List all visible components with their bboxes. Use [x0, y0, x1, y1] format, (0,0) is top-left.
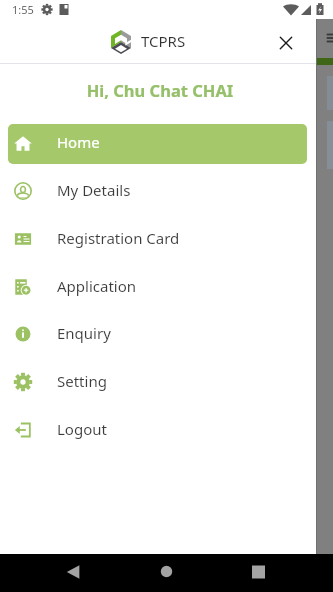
button[interactable]: Logout	[0, 409, 307, 449]
button[interactable]: Back	[52, 554, 94, 592]
button[interactable]: My Details	[0, 170, 307, 210]
button[interactable]: Application	[0, 266, 307, 306]
button[interactable]: Home	[0, 122, 307, 162]
staticText: My Details	[57, 180, 131, 200]
staticText: Home	[57, 132, 100, 152]
staticText: TCPRS	[141, 31, 186, 51]
staticText: Application	[57, 276, 137, 296]
staticText: Setting	[57, 371, 107, 391]
staticText: Hi, Chu Chat CHAI	[2, 79, 318, 101]
button[interactable]: Home	[145, 554, 187, 592]
button[interactable]: Close drawer	[272, 29, 300, 57]
staticText: 1:55	[12, 2, 34, 17]
button[interactable]: Registration Card	[0, 218, 307, 258]
staticText: Registration Card	[57, 228, 180, 248]
button[interactable]: Setting	[0, 361, 307, 401]
button[interactable]: Enquiry	[0, 313, 307, 353]
staticText: Enquiry	[57, 323, 111, 343]
button[interactable]: Recent apps	[238, 554, 280, 592]
staticText: Logout	[57, 419, 107, 439]
